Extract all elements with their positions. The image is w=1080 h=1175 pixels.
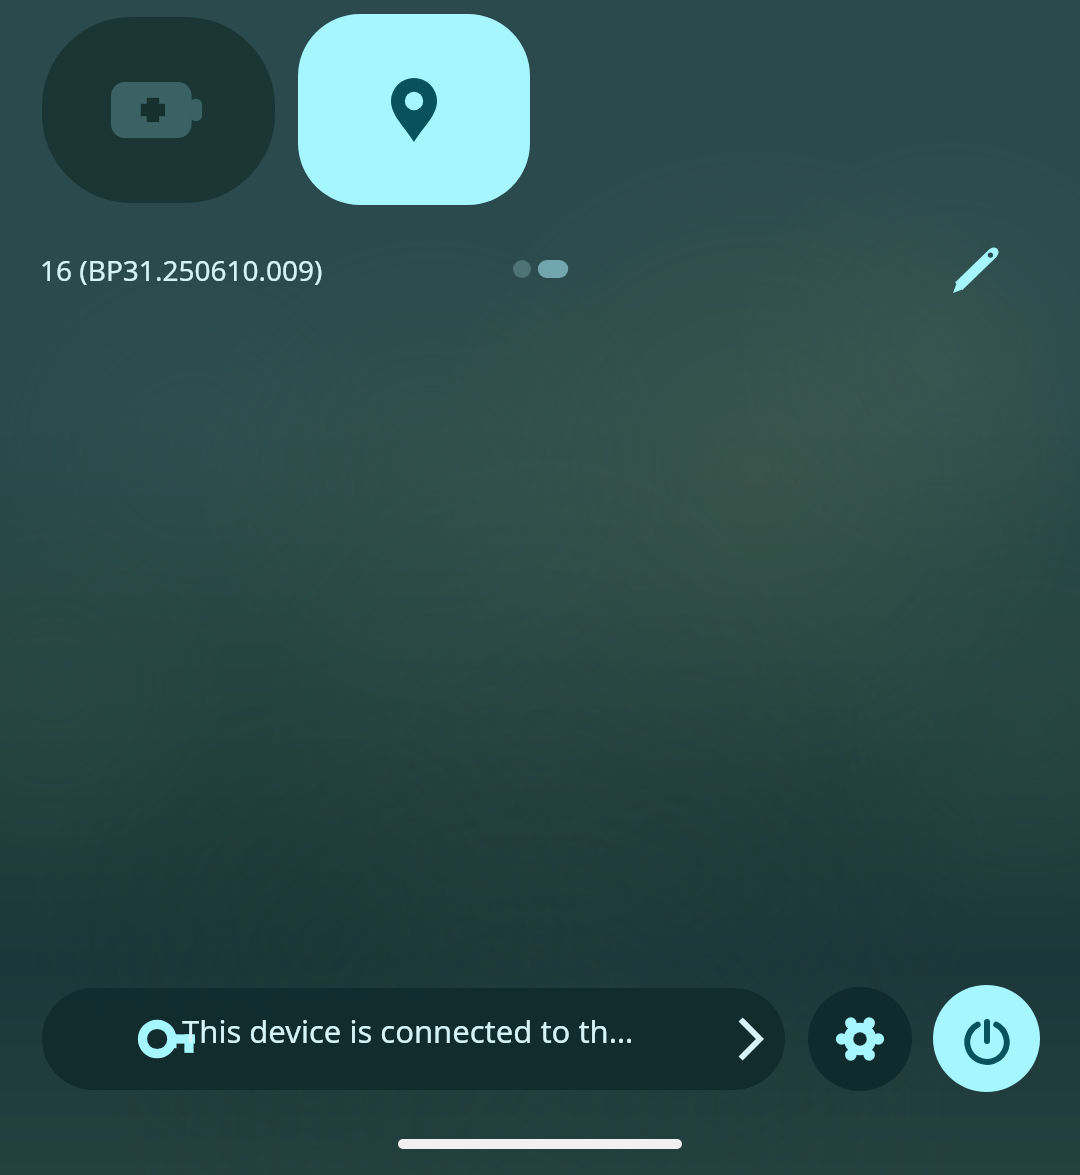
button[interactable]: Edit (938, 232, 1014, 308)
button[interactable]: Settings (808, 987, 912, 1091)
button[interactable]: Battery Saver (42, 17, 275, 203)
button[interactable]: Power off (933, 985, 1040, 1092)
staticText: This device is connected to th… (182, 1010, 634, 1052)
staticText: 16 (BP31.250610.009) (40, 251, 323, 289)
button[interactable]: Location (298, 14, 530, 205)
button[interactable]: This device is connected to th… (42, 988, 785, 1090)
